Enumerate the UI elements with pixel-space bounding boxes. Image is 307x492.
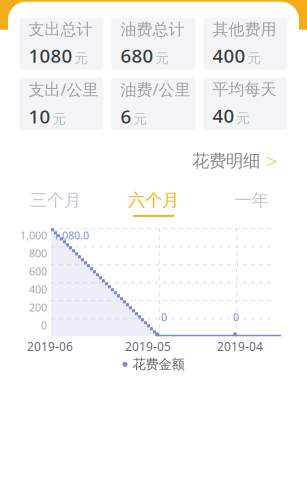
button[interactable]: 花费明细: [188, 140, 281, 182]
staticText: 600: [29, 264, 47, 278]
staticText: >: [266, 148, 277, 174]
button[interactable]: 一年: [206, 186, 296, 220]
staticText: 三个月: [30, 190, 81, 211]
staticText: 油费/公里: [120, 79, 190, 100]
staticText: 元: [236, 110, 249, 127]
button[interactable]: 三个月: [10, 186, 100, 220]
staticText: 2019-05: [125, 338, 171, 354]
staticText: 1,000: [20, 228, 47, 242]
button[interactable]: 六个月: [108, 186, 198, 220]
staticText: 油费总计: [120, 19, 184, 39]
staticText: 2019-04: [217, 338, 263, 354]
staticText: 花费金额: [132, 356, 184, 372]
staticText: 支出/公里: [28, 79, 98, 100]
staticText: 六个月: [128, 190, 179, 211]
staticText: 10: [28, 104, 50, 129]
staticText: 40: [212, 103, 234, 128]
staticText: 其他费用: [212, 19, 276, 39]
staticText: 支出总计: [28, 19, 92, 39]
staticText: 花费明细: [192, 150, 260, 172]
staticText: 一年: [234, 190, 268, 211]
staticText: 200: [29, 300, 47, 314]
staticText: 元: [52, 111, 65, 127]
staticText: 1080: [28, 43, 72, 68]
staticText: 0: [41, 318, 47, 332]
staticText: 6: [120, 104, 131, 129]
staticText: 400: [29, 282, 47, 296]
staticText: 1,080.0: [53, 228, 89, 242]
staticText: 元: [133, 111, 146, 127]
staticText: 2019-06: [27, 338, 73, 354]
staticText: 800: [29, 246, 47, 260]
staticText: 0: [233, 310, 239, 324]
staticText: 平均每天: [212, 79, 276, 99]
staticText: 元: [74, 50, 87, 67]
staticText: 元: [155, 50, 168, 67]
staticText: 元: [247, 50, 260, 67]
staticText: 400: [212, 43, 245, 68]
staticText: 680: [120, 43, 153, 68]
staticText: 0: [161, 310, 167, 324]
